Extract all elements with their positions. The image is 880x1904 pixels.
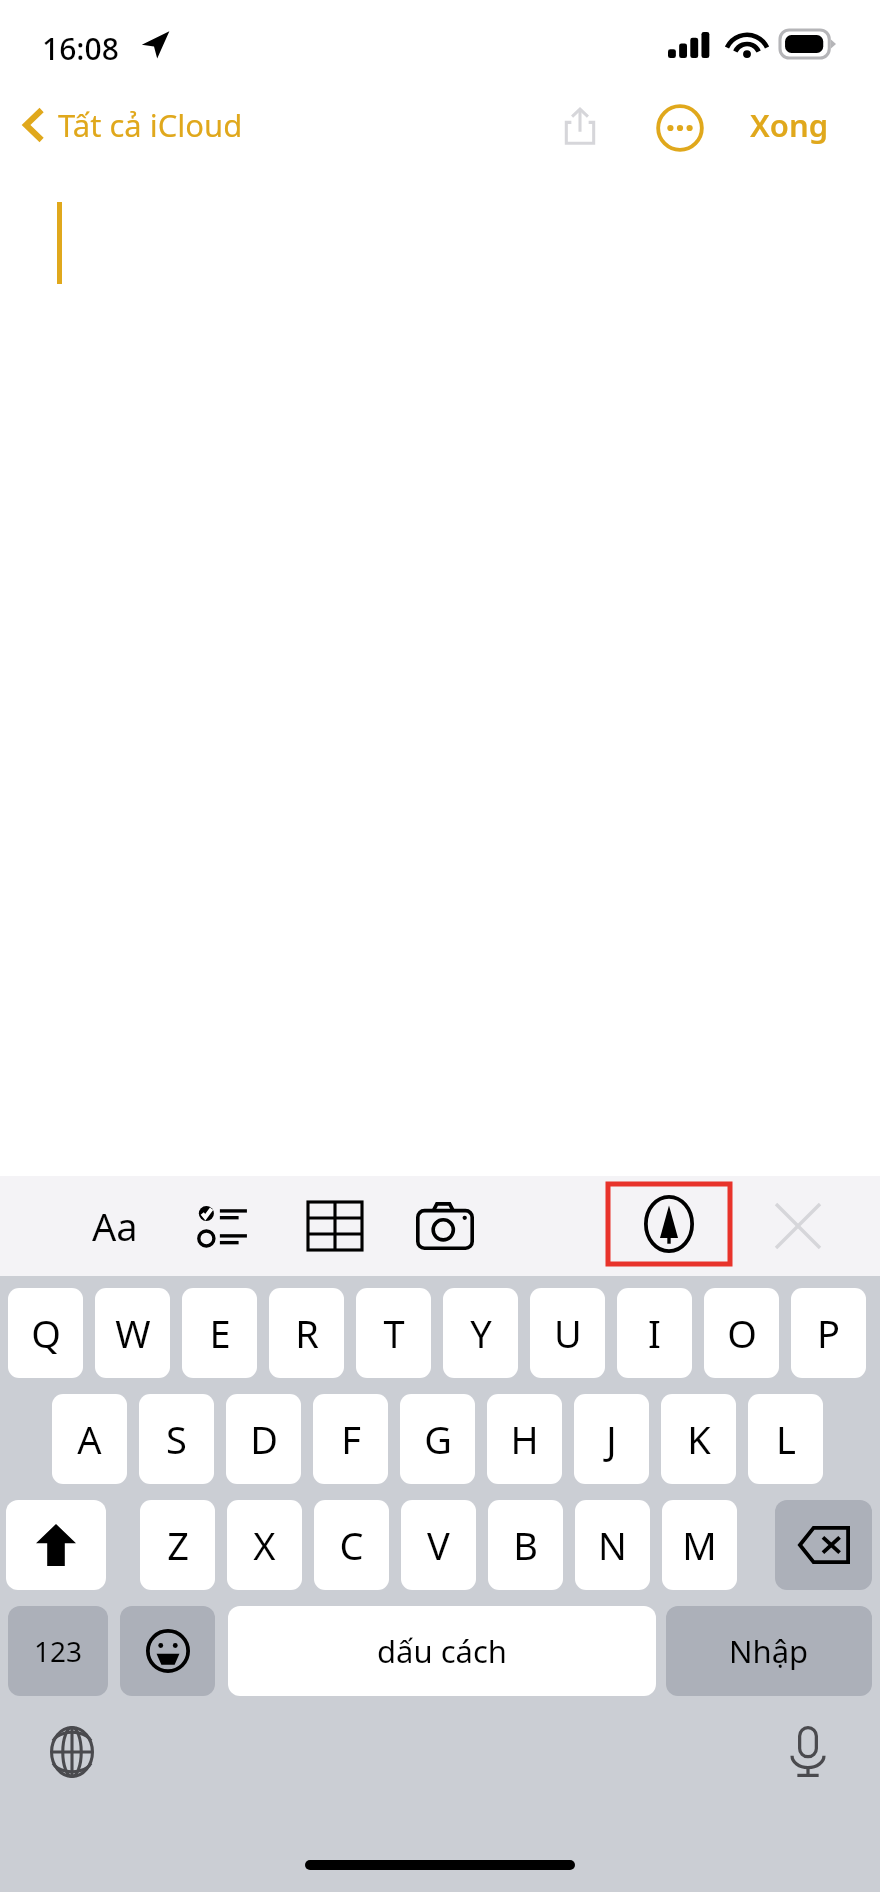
button[interactable]: I [617, 1288, 692, 1378]
button[interactable]: Y [443, 1288, 518, 1378]
staticText: 16:08 [42, 28, 119, 69]
staticText: Z [167, 1519, 189, 1571]
button[interactable]: R [269, 1288, 344, 1378]
staticText: X [253, 1519, 276, 1571]
button[interactable]: F [313, 1394, 388, 1484]
button[interactable]: A [52, 1394, 127, 1484]
button[interactable]: S [139, 1394, 214, 1484]
button[interactable]: Dictate [768, 1712, 848, 1792]
button[interactable]: C [314, 1500, 389, 1590]
staticText: W [115, 1307, 151, 1359]
button[interactable]: Share [548, 94, 612, 158]
staticText: A [77, 1413, 102, 1465]
staticText: Y [470, 1307, 492, 1359]
button[interactable]: Close [760, 1194, 836, 1258]
staticText: V [427, 1519, 450, 1571]
staticText: B [513, 1519, 538, 1571]
button[interactable]: D [226, 1394, 301, 1484]
staticText: P [817, 1307, 840, 1359]
button[interactable]: X [227, 1500, 302, 1590]
staticText: Xong [750, 104, 829, 146]
button[interactable]: Emoji [120, 1606, 215, 1696]
button[interactable]: H [487, 1394, 562, 1484]
button[interactable]: Change keyboard [32, 1712, 112, 1792]
staticText: H [510, 1413, 539, 1465]
staticText: Q [31, 1307, 61, 1359]
button[interactable]: Camera [405, 1194, 485, 1258]
button[interactable]: P [791, 1288, 866, 1378]
button[interactable]: Markup [608, 1184, 730, 1264]
staticText: E [209, 1307, 231, 1359]
button[interactable]: Nhập [666, 1606, 872, 1696]
staticText: M [682, 1519, 717, 1571]
staticText: F [341, 1413, 361, 1465]
button[interactable]: M [662, 1500, 737, 1590]
staticText: I [648, 1307, 661, 1359]
staticText: dấu cách [377, 1630, 507, 1672]
button[interactable]: Xong [740, 96, 839, 154]
staticText: N [598, 1519, 627, 1571]
staticText: 123 [34, 1632, 83, 1670]
button[interactable]: Backspace [775, 1500, 872, 1590]
button[interactable]: dấu cách [228, 1606, 656, 1696]
staticText: Tất cả iCloud [58, 104, 243, 146]
button[interactable]: W [95, 1288, 170, 1378]
button[interactable]: Q [8, 1288, 83, 1378]
button[interactable]: 123 [8, 1606, 108, 1696]
button[interactable]: V [401, 1500, 476, 1590]
button[interactable]: Table [295, 1194, 375, 1258]
button[interactable]: G [400, 1394, 475, 1484]
button[interactable]: O [704, 1288, 779, 1378]
button[interactable]: More [650, 98, 710, 158]
button[interactable]: J [574, 1394, 649, 1484]
button[interactable]: Checklist [185, 1194, 261, 1258]
button[interactable]: U [530, 1288, 605, 1378]
staticText: G [424, 1413, 452, 1465]
button[interactable]: N [575, 1500, 650, 1590]
button[interactable]: Tất cả iCloud [16, 96, 251, 154]
staticText: O [727, 1307, 757, 1359]
staticText: Nhập [729, 1630, 809, 1672]
button[interactable]: L [748, 1394, 823, 1484]
button[interactable]: E [182, 1288, 257, 1378]
staticText: L [776, 1413, 796, 1465]
staticText: U [554, 1307, 582, 1359]
button[interactable]: Shift [6, 1500, 106, 1590]
staticText: T [383, 1307, 405, 1359]
button[interactable]: T [356, 1288, 431, 1378]
staticText: S [166, 1413, 187, 1465]
staticText: C [339, 1519, 364, 1571]
button[interactable]: K [661, 1394, 736, 1484]
staticText: D [250, 1413, 278, 1465]
staticText: J [606, 1413, 617, 1465]
staticText: K [687, 1413, 711, 1465]
button[interactable]: Z [140, 1500, 215, 1590]
button[interactable]: B [488, 1500, 563, 1590]
staticText: Aa [92, 1200, 138, 1252]
staticText: R [295, 1307, 319, 1359]
button[interactable]: Aa [70, 1194, 160, 1258]
